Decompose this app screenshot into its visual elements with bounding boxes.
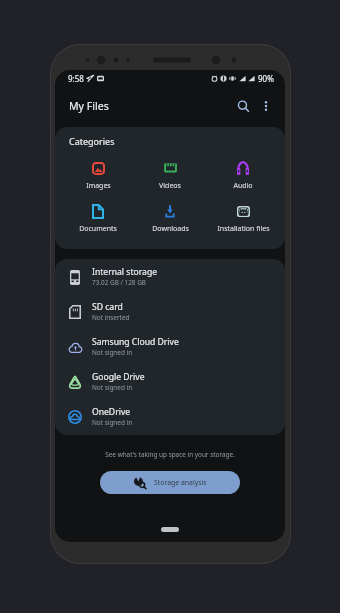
- button[interactable]: Storage analysis: [100, 471, 240, 494]
- staticText: OneDrive: [92, 406, 131, 418]
- staticText: 9:58: [68, 73, 84, 84]
- button[interactable]: Google Drive: [55, 364, 285, 399]
- button[interactable]: Videos: [136, 159, 204, 191]
- staticText: Samsung Cloud Drive: [92, 336, 179, 348]
- staticText: See what's taking up space in your stora…: [55, 450, 285, 459]
- button[interactable]: SD card: [55, 294, 285, 329]
- button[interactable]: Search: [231, 94, 255, 118]
- button[interactable]: Samsung Cloud Drive: [55, 329, 285, 364]
- staticText: Not inserted: [92, 313, 130, 322]
- staticText: Google Drive: [92, 371, 145, 383]
- button[interactable]: OneDrive: [55, 399, 285, 434]
- button[interactable]: Audio: [209, 159, 277, 191]
- staticText: Storage analysis: [154, 478, 207, 487]
- staticText: My Files: [69, 99, 109, 113]
- staticText: Audio: [233, 181, 253, 191]
- staticText: 73.02 GB / 128 GB: [92, 278, 146, 287]
- staticText: Documents: [79, 224, 117, 234]
- staticText: Not signed in: [92, 348, 133, 357]
- button[interactable]: Documents: [64, 202, 132, 234]
- button[interactable]: More options: [255, 95, 277, 117]
- button[interactable]: Installation files: [209, 202, 277, 234]
- staticText: Images: [86, 181, 111, 191]
- staticText: Not signed in: [92, 383, 133, 392]
- staticText: 90%: [258, 73, 274, 84]
- staticText: SD card: [92, 301, 123, 313]
- button[interactable]: Images: [64, 159, 132, 191]
- staticText: Installation files: [217, 224, 270, 234]
- staticText: Videos: [159, 181, 181, 191]
- staticText: Categories: [69, 135, 115, 147]
- staticText: Downloads: [152, 224, 189, 234]
- button[interactable]: Downloads: [136, 202, 204, 234]
- button[interactable]: Internal storage: [55, 259, 285, 294]
- staticText: Internal storage: [92, 266, 158, 278]
- staticText: Not signed in: [92, 418, 133, 427]
